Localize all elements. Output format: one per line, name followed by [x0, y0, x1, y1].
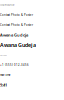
staticText: Awana Gudeja: [0, 32, 28, 38]
staticText: Awana Gudeja: [0, 41, 36, 49]
staticText: Contact Photo & Poster: [0, 13, 33, 17]
staticText: message: [0, 54, 7, 56]
staticText: Contact Photo & Poster: [0, 4, 15, 6]
staticText: FaceTime: [0, 73, 11, 77]
staticText: 9:41: [0, 82, 7, 88]
staticText: Contact Photo & Poster: [0, 23, 33, 27]
staticText: +1 (555) 012-3456: [0, 63, 29, 67]
